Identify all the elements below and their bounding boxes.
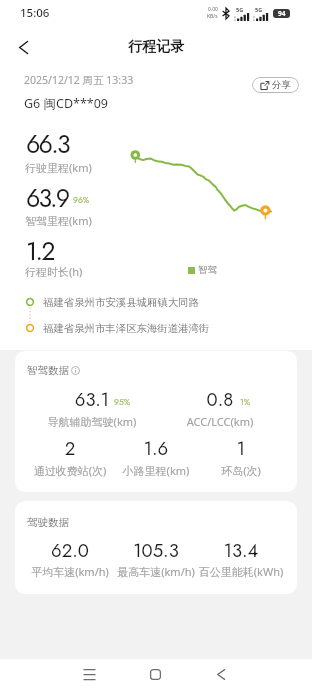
button[interactable]: 62.0 bbox=[15, 537, 130, 580]
staticText: 福建省泉州市安溪县城厢镇大同路 bbox=[43, 296, 199, 309]
staticText: 15:06 bbox=[20, 5, 50, 21]
staticText: 1 bbox=[181, 435, 297, 462]
staticText: 2 bbox=[15, 435, 130, 462]
staticText: 行程时长(h) bbox=[25, 264, 83, 279]
staticText: ACC/LCC(km) bbox=[160, 414, 280, 429]
staticText: 环岛(次) bbox=[181, 463, 297, 478]
staticText: 导航辅助驾驶(km) bbox=[32, 414, 152, 429]
staticText: 96% bbox=[73, 194, 90, 206]
staticText: 智驾 bbox=[198, 264, 217, 276]
staticText: 94 bbox=[278, 9, 286, 18]
staticText: 1.2 bbox=[26, 233, 54, 269]
button[interactable]: 分享 bbox=[252, 77, 299, 93]
staticText: 13.4 bbox=[181, 537, 297, 564]
button[interactable]: Back bbox=[6, 30, 40, 64]
staticText: 通过收费站(次) bbox=[15, 463, 130, 478]
staticText: 行程记录 bbox=[128, 38, 185, 56]
button[interactable]: 1 bbox=[181, 435, 297, 479]
staticText: 0.8 bbox=[160, 386, 280, 413]
staticText: 1.6 bbox=[96, 435, 216, 462]
staticText: 5G bbox=[255, 6, 263, 13]
button[interactable]: 63.1 bbox=[32, 386, 152, 430]
staticText: 105.3 bbox=[96, 537, 216, 564]
button[interactable]: 1.6 bbox=[96, 435, 216, 479]
staticText: 智驾数据 bbox=[27, 364, 69, 377]
staticText: 福建省泉州市丰泽区东海街道港湾街 bbox=[43, 322, 210, 335]
button[interactable]: 0.8 bbox=[160, 386, 280, 430]
staticText: 0.00 bbox=[208, 6, 218, 13]
button[interactable]: Back bbox=[201, 659, 241, 689]
staticText: 2025/12/12 周五 13:33 bbox=[24, 73, 134, 87]
staticText: 62.0 bbox=[15, 537, 130, 564]
staticText: KB/s bbox=[207, 13, 218, 20]
staticText: 驾驶数据 bbox=[27, 516, 69, 529]
staticText: 63.9 bbox=[26, 180, 69, 216]
staticText: 小路里程(km) bbox=[96, 463, 216, 478]
button[interactable]: 2 bbox=[15, 435, 130, 479]
staticText: 百公里能耗(kWh) bbox=[181, 564, 297, 579]
staticText: 智驾里程(km) bbox=[25, 213, 92, 228]
button[interactable]: Recent apps bbox=[69, 659, 109, 689]
button[interactable]: 105.3 bbox=[96, 537, 216, 580]
button[interactable]: 福建省泉州市安溪县城厢镇大同路 bbox=[43, 294, 312, 311]
button[interactable]: 福建省泉州市丰泽区东海街道港湾街 bbox=[43, 320, 312, 337]
button[interactable]: 13.4 bbox=[181, 537, 297, 580]
button[interactable]: 智驾数据 bbox=[27, 364, 80, 377]
staticText: 1% bbox=[240, 396, 251, 408]
staticText: 5G bbox=[236, 6, 244, 13]
staticText: 平均车速(km/h) bbox=[15, 564, 130, 579]
staticText: G6 闽CD***09 bbox=[24, 95, 108, 112]
staticText: 分享 bbox=[272, 79, 291, 91]
staticText: 行驶里程(km) bbox=[25, 160, 92, 175]
button[interactable]: Home bbox=[135, 659, 175, 689]
staticText: 95% bbox=[114, 396, 131, 408]
staticText: 最高车速(km/h) bbox=[96, 564, 216, 579]
staticText: 66.3 bbox=[26, 126, 69, 162]
staticText: 63.1 bbox=[32, 386, 152, 413]
